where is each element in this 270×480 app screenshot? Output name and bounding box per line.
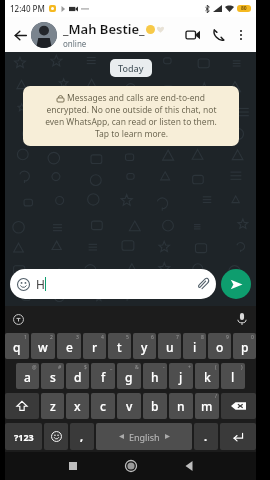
staticText: H — [36, 276, 45, 292]
staticText: ) — [241, 364, 243, 371]
button[interactable]: Messages and calls are end-to-end — [23, 86, 239, 146]
staticText: d — [74, 369, 82, 385]
button[interactable]: Voice call — [207, 24, 229, 46]
button[interactable]: z — [41, 393, 64, 419]
button[interactable]: & — [117, 363, 141, 389]
other: Attach — [197, 278, 209, 290]
staticText: ( — [215, 364, 217, 371]
staticText: j — [179, 369, 183, 385]
staticText: Today — [118, 62, 144, 74]
button[interactable]: . — [194, 423, 218, 450]
button[interactable]: 5 — [108, 333, 131, 359]
button[interactable]: Recent apps — [58, 452, 88, 480]
button[interactable]: x — [66, 393, 89, 419]
button[interactable]: _Mah Bestie_ — [63, 20, 182, 49]
button[interactable]: n — [169, 393, 193, 419]
button[interactable]: 7 — [158, 333, 181, 359]
staticText: k — [204, 369, 211, 385]
staticText: _ — [110, 364, 113, 371]
staticText: 7 — [176, 334, 179, 341]
staticText: p — [241, 339, 249, 355]
staticText: 3 — [76, 334, 79, 341]
button[interactable]: ( — [195, 363, 219, 389]
staticText: y — [141, 339, 148, 355]
button[interactable]: Backspace — [221, 393, 256, 419]
staticText: 4 — [101, 334, 104, 341]
staticText: 1 — [24, 334, 27, 341]
button[interactable]: Today — [118, 62, 144, 74]
button[interactable]: English — [96, 423, 192, 450]
staticText: 2 — [50, 334, 53, 341]
button[interactable]: Clipboard — [11, 312, 25, 326]
staticText: c — [100, 398, 106, 414]
staticText: i — [193, 339, 197, 355]
button[interactable]: 4 — [83, 333, 106, 359]
staticText: s — [50, 369, 56, 385]
button[interactable]: Shift — [5, 393, 39, 419]
staticText: r — [92, 339, 98, 355]
button[interactable]: 2 — [31, 333, 55, 359]
button[interactable]: More options — [231, 25, 251, 45]
button[interactable]: Emoji — [10, 269, 216, 299]
button[interactable]: # — [41, 363, 64, 389]
button[interactable]: Back — [10, 25, 30, 45]
staticText: q — [13, 339, 21, 355]
staticText: e — [66, 339, 73, 355]
staticText: t — [117, 339, 122, 355]
staticText: 0 — [251, 334, 254, 341]
button[interactable]: 0 — [233, 333, 256, 359]
button[interactable]: b — [143, 393, 167, 419]
staticText: , — [80, 429, 84, 444]
staticText: 9 — [226, 334, 229, 341]
staticText: even WhatsApp, can read or listen to the… — [45, 116, 217, 128]
button[interactable]: Send — [221, 269, 251, 299]
staticText: n — [177, 398, 185, 414]
staticText: . — [204, 429, 208, 444]
button[interactable]: $ — [66, 363, 89, 389]
other: Emoji — [17, 278, 30, 291]
staticText: a — [24, 369, 31, 385]
staticText: # — [58, 364, 62, 371]
button[interactable]: , — [70, 423, 94, 450]
staticText: 6 — [151, 334, 154, 341]
staticText: w — [38, 339, 48, 355]
staticText: 5 — [126, 334, 129, 341]
staticText: z — [50, 398, 56, 414]
button[interactable]: 9 — [208, 333, 231, 359]
button[interactable]: 3 — [57, 333, 81, 359]
staticText: g — [125, 369, 133, 385]
button[interactable]: Home — [116, 452, 146, 480]
button[interactable]: Voice input — [234, 311, 250, 327]
staticText: 80 — [241, 5, 247, 12]
button[interactable]: Emoji keyboard — [44, 423, 68, 450]
button[interactable]: 8 — [183, 333, 206, 359]
button[interactable]: Video call — [182, 24, 204, 46]
button[interactable]: Back — [174, 452, 204, 480]
button[interactable]: ) — [221, 363, 245, 389]
staticText: 8 — [201, 334, 204, 341]
staticText: + — [188, 364, 191, 371]
button[interactable]: - — [143, 363, 167, 389]
staticText: _Mah Bestie_ — [63, 20, 145, 38]
button[interactable]: 6 — [133, 333, 156, 359]
staticText: m — [201, 398, 213, 414]
button[interactable]: / — [195, 393, 219, 419]
staticText: ?123 — [14, 431, 34, 443]
button[interactable]: ?123 — [5, 423, 42, 450]
staticText: l — [231, 369, 235, 385]
staticText: x — [74, 398, 81, 414]
staticText: h — [151, 369, 159, 385]
staticText: v — [126, 398, 133, 414]
button[interactable]: 1 — [5, 333, 29, 359]
button[interactable]: _ — [91, 363, 115, 389]
button[interactable]: c — [91, 393, 115, 419]
staticText: Messages and calls are end-to-end — [67, 92, 206, 104]
staticText: $ — [84, 364, 87, 371]
staticText: English — [129, 431, 160, 443]
button[interactable]: Enter — [220, 423, 256, 450]
button[interactable]: @ — [16, 363, 39, 389]
staticText: / — [215, 393, 217, 400]
button[interactable]: + — [169, 363, 193, 389]
button[interactable]: v — [117, 393, 141, 419]
staticText: b — [151, 398, 159, 414]
